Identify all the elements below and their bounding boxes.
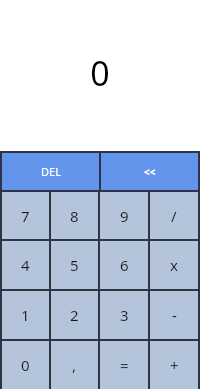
- button[interactable]: =: [100, 341, 148, 389]
- staticText: +: [170, 355, 179, 375]
- staticText: x: [170, 255, 178, 275]
- staticText: 3: [120, 305, 129, 325]
- button[interactable]: 2: [51, 291, 98, 339]
- staticText: 1: [21, 305, 30, 325]
- button[interactable]: /: [150, 192, 198, 239]
- button[interactable]: DEL: [2, 153, 99, 190]
- staticText: <<: [144, 165, 156, 179]
- staticText: ,: [72, 355, 77, 375]
- button[interactable]: 1: [2, 291, 49, 339]
- staticText: 9: [120, 206, 129, 226]
- button[interactable]: 9: [100, 192, 148, 239]
- staticText: DEL: [41, 164, 61, 179]
- staticText: 2: [70, 305, 79, 325]
- button[interactable]: 7: [2, 192, 49, 239]
- staticText: 5: [70, 255, 79, 275]
- staticText: 0: [21, 355, 30, 375]
- button[interactable]: 5: [51, 241, 98, 289]
- button[interactable]: +: [150, 341, 198, 389]
- staticText: -: [172, 305, 177, 325]
- button[interactable]: -: [150, 291, 198, 339]
- button[interactable]: 4: [2, 241, 49, 289]
- staticText: =: [120, 355, 129, 375]
- staticText: 7: [21, 206, 30, 226]
- button[interactable]: 8: [51, 192, 98, 239]
- button[interactable]: 3: [100, 291, 148, 339]
- button[interactable]: x: [150, 241, 198, 289]
- staticText: 4: [21, 255, 30, 275]
- staticText: 6: [120, 255, 129, 275]
- staticText: 0: [90, 50, 110, 96]
- button[interactable]: Backspace: [101, 153, 198, 190]
- button[interactable]: 0: [2, 341, 49, 389]
- button[interactable]: ,: [51, 341, 98, 389]
- staticText: /: [171, 206, 177, 226]
- button[interactable]: 6: [100, 241, 148, 289]
- staticText: 8: [70, 206, 79, 226]
